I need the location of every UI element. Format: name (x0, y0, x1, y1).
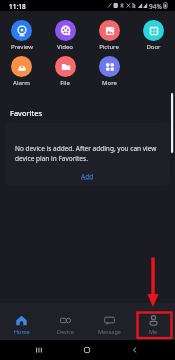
button[interactable]: Device (43, 303, 87, 340)
button[interactable]: Door (131, 20, 175, 50)
staticText: Picture (99, 43, 119, 50)
button[interactable]: Picture (87, 20, 131, 50)
button[interactable]: Home (79, 340, 95, 360)
staticText: Alarm (13, 79, 30, 86)
button[interactable]: Message (87, 303, 131, 340)
staticText: 94% (149, 2, 162, 11)
staticText: Favorites (10, 108, 43, 118)
button[interactable]: Add (78, 171, 97, 182)
button[interactable]: Me (131, 303, 175, 340)
staticText: 11:18 (9, 2, 26, 11)
button[interactable]: Recents (31, 340, 47, 360)
staticText: Preview (11, 43, 33, 50)
staticText: Home (14, 328, 30, 335)
staticText: No device is added. After adding, you ca… (15, 144, 157, 163)
button[interactable]: Home (0, 303, 43, 340)
button[interactable]: Back (127, 340, 143, 360)
button[interactable]: Video (43, 20, 87, 50)
staticText: Me (149, 328, 158, 335)
staticText: Video (57, 43, 73, 50)
button[interactable]: Alarm (0, 56, 43, 86)
staticText: Message (98, 328, 121, 335)
staticText: More (102, 79, 117, 86)
staticText: Door (146, 43, 161, 50)
button[interactable]: Preview (0, 20, 43, 50)
button[interactable]: File (43, 56, 87, 86)
staticText: File (60, 79, 70, 86)
button[interactable]: More (87, 56, 131, 86)
staticText: Device (57, 328, 74, 335)
